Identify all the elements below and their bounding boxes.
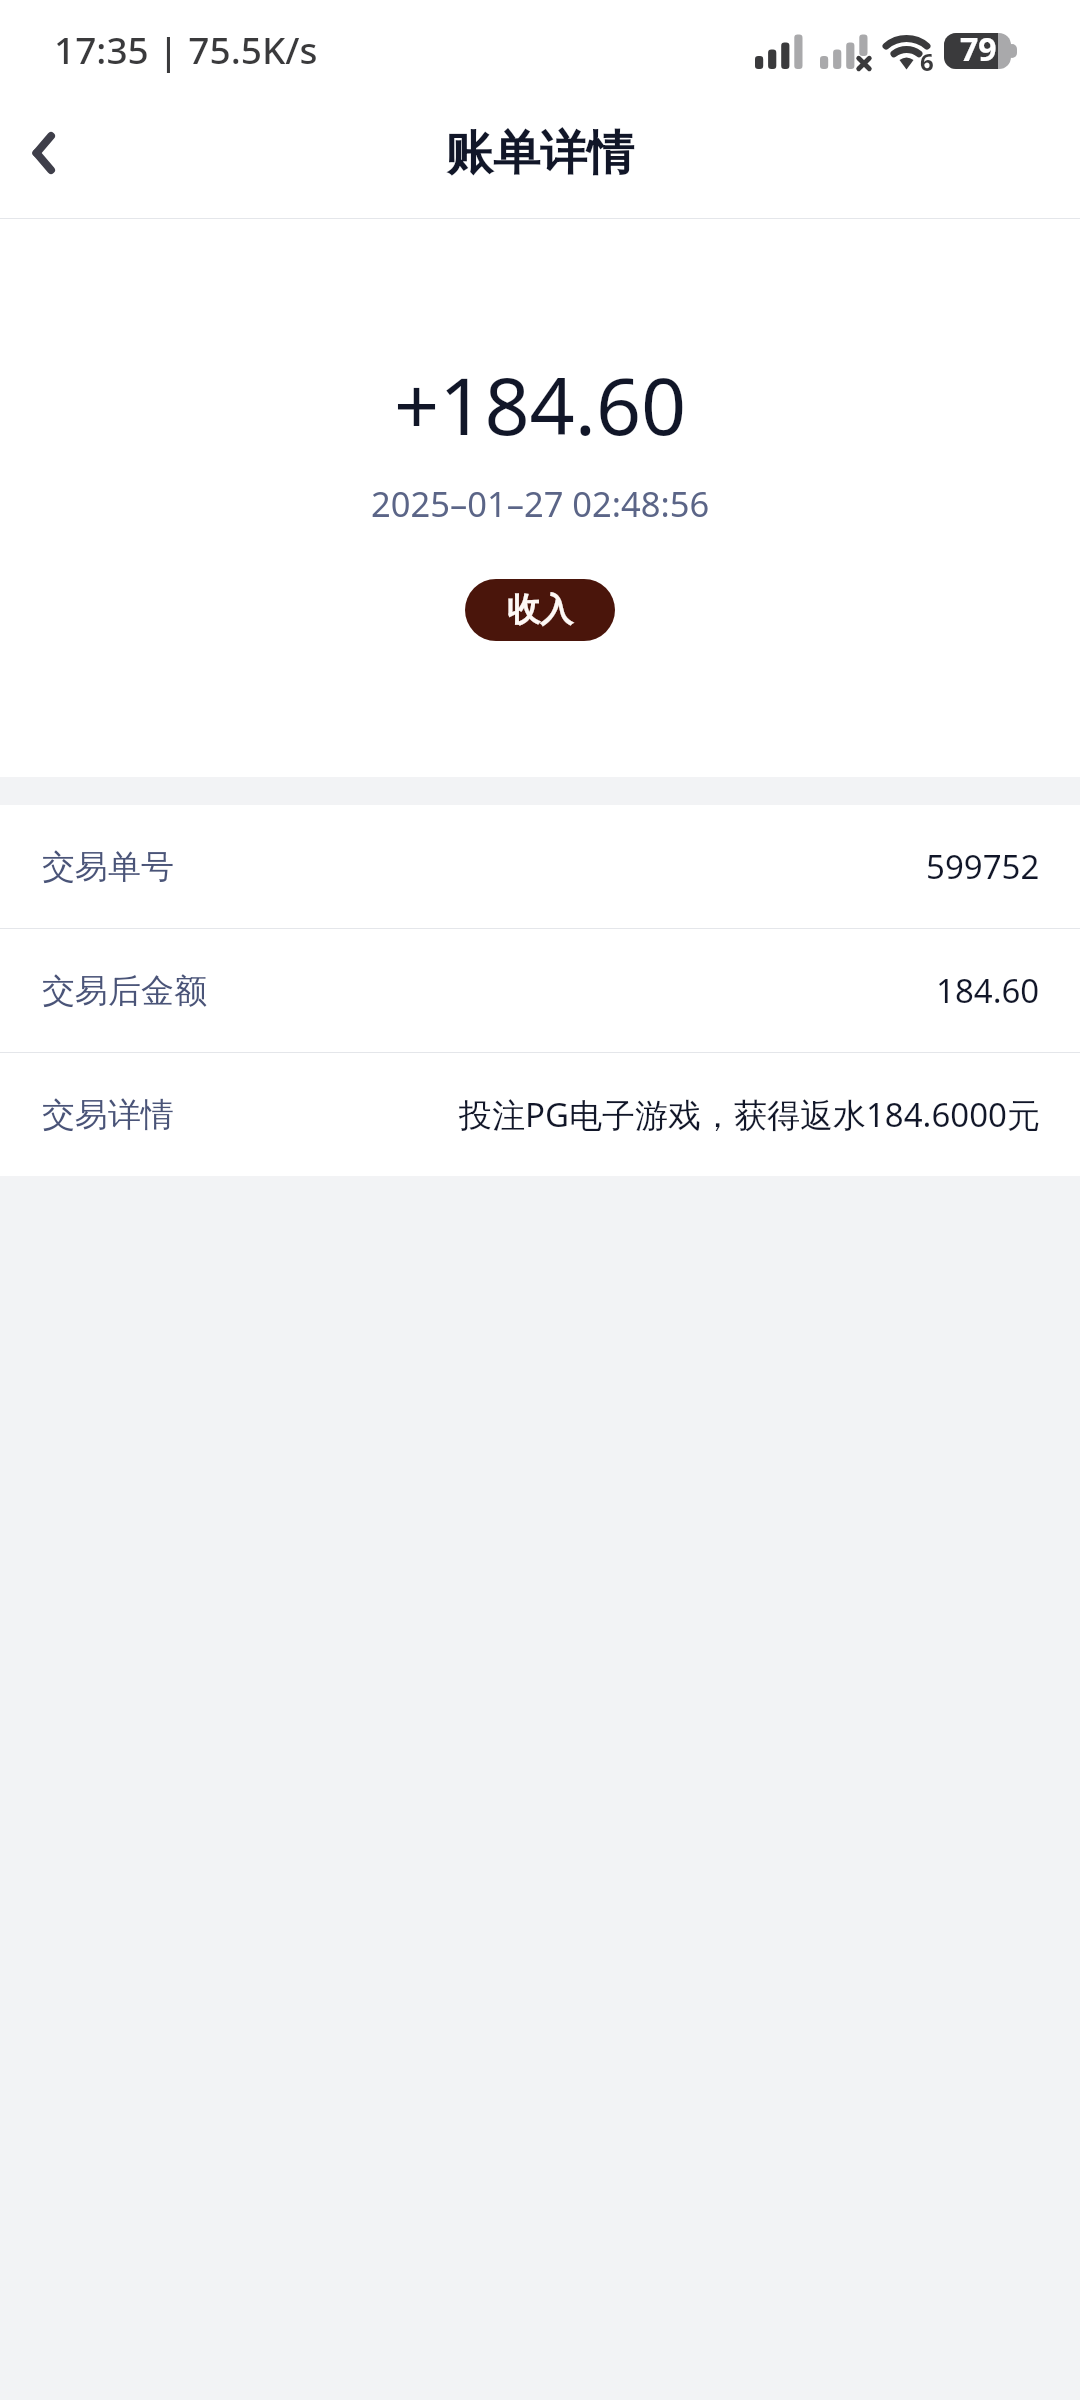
staticText: 6: [920, 45, 934, 77]
button[interactable]: 交易单号: [0, 805, 1080, 928]
button[interactable]: 交易后金额: [0, 929, 1080, 1052]
button[interactable]: 交易详情: [0, 1053, 1080, 1176]
staticText: 收入: [507, 589, 573, 631]
staticText: +184.60: [394, 351, 687, 459]
button[interactable]: 收入: [465, 579, 615, 641]
button[interactable]: Back: [0, 105, 88, 193]
staticText: 交易单号: [42, 846, 174, 888]
staticText: 17:35 | 75.5K/s: [54, 24, 318, 74]
staticText: 投注PG电子游戏，获得返水184.6000元: [459, 1092, 1040, 1137]
staticText: 交易详情: [42, 1094, 174, 1136]
staticText: 79: [960, 27, 997, 71]
staticText: 交易后金额: [42, 970, 207, 1012]
staticText: 599752: [926, 844, 1040, 889]
staticText: 账单详情: [446, 124, 634, 183]
staticText: 2025–01–27 02:48:56: [371, 480, 710, 527]
staticText: 184.60: [936, 968, 1040, 1013]
